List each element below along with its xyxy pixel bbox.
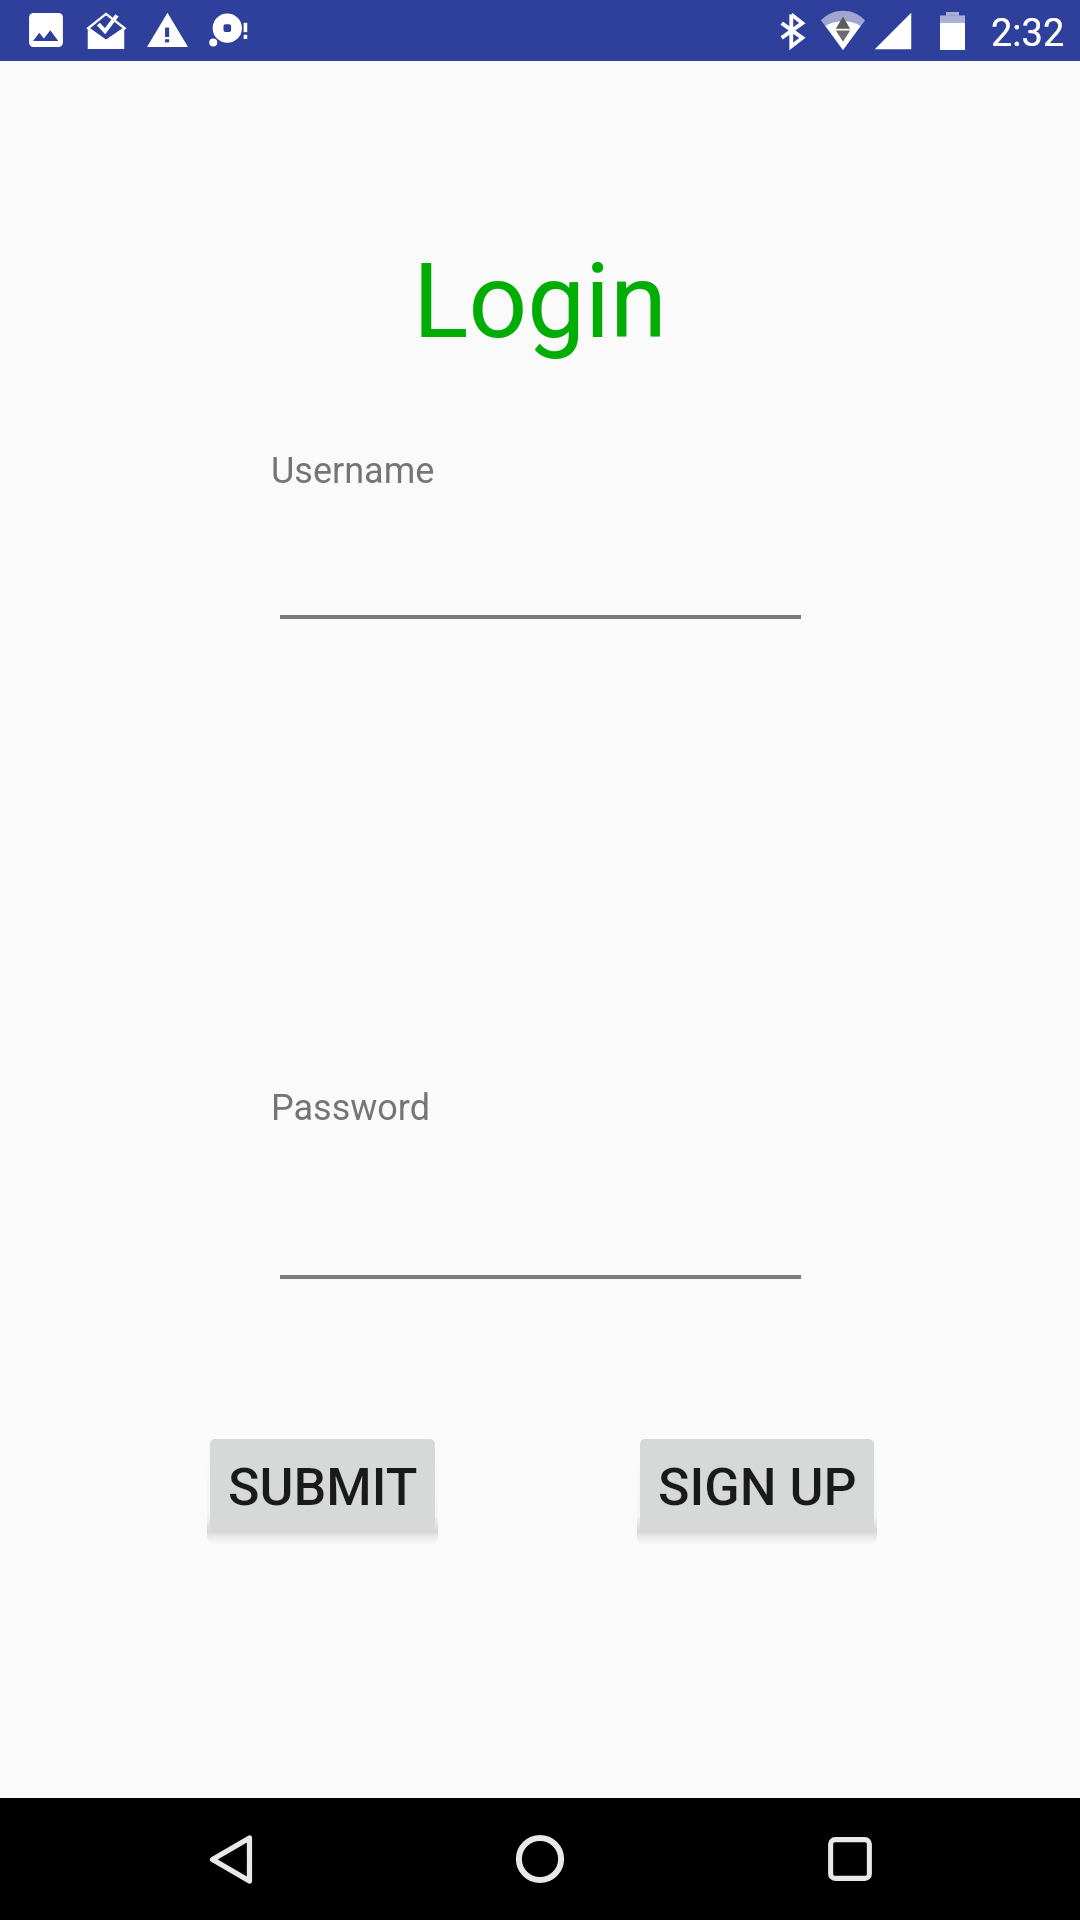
- button[interactable]: Recent apps: [779, 1798, 921, 1920]
- button[interactable]: SIGN UP: [640, 1439, 874, 1531]
- staticText: Password: [271, 1087, 431, 1129]
- button[interactable]: Username: [271, 430, 801, 619]
- button[interactable]: Back: [160, 1798, 302, 1920]
- button[interactable]: Password: [271, 1067, 801, 1279]
- staticText: Login: [0, 241, 1080, 362]
- button[interactable]: Home: [469, 1798, 611, 1920]
- button[interactable]: SUBMIT: [210, 1439, 435, 1531]
- staticText: Username: [271, 450, 435, 492]
- staticText: SUBMIT: [228, 1457, 418, 1518]
- staticText: 2:32: [991, 11, 1065, 56]
- staticText: SIGN UP: [658, 1457, 857, 1518]
